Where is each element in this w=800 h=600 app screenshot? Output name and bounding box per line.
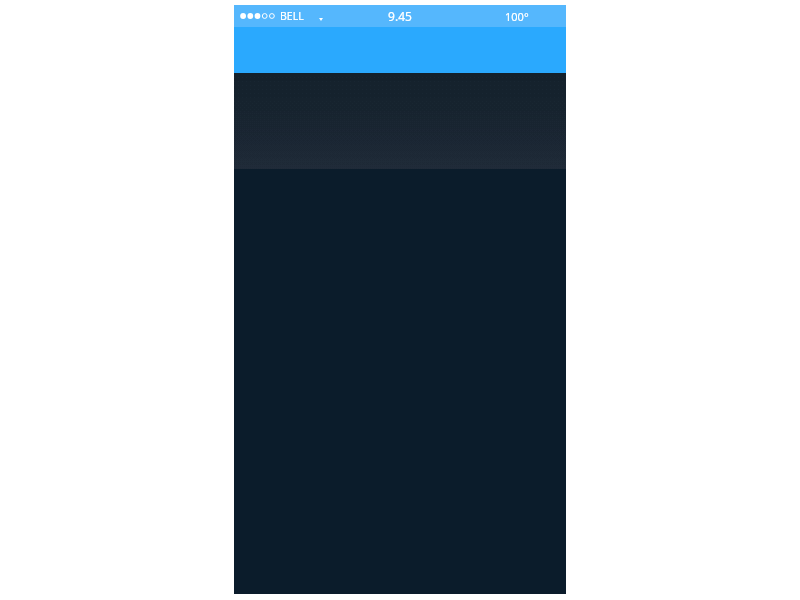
other: Signal strength — [240, 11, 280, 21]
other: Network indicator — [317, 8, 325, 24]
staticText: 9.45 — [388, 8, 412, 24]
staticText: 100° — [505, 9, 529, 24]
staticText: BELL — [280, 9, 304, 23]
